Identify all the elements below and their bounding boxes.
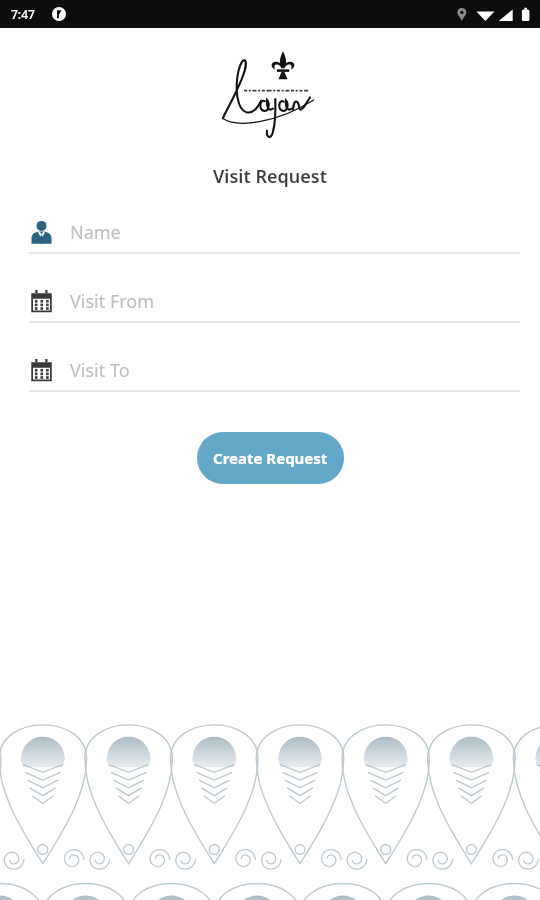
button[interactable]: Pick date xyxy=(29,289,520,323)
staticText: Visit Request xyxy=(0,164,540,189)
other: Pick date xyxy=(29,358,54,383)
other: Pick date xyxy=(29,289,54,314)
button[interactable]: Person xyxy=(29,220,520,254)
other: Person xyxy=(29,220,54,245)
staticText: Create Request xyxy=(213,448,328,468)
staticText: Name xyxy=(70,220,121,245)
staticText: Visit To xyxy=(70,358,130,383)
button[interactable]: Create Request xyxy=(197,432,344,484)
staticText: 7:47 xyxy=(11,6,35,22)
button[interactable]: Pick date xyxy=(29,358,520,392)
staticText: Visit From xyxy=(70,289,155,314)
